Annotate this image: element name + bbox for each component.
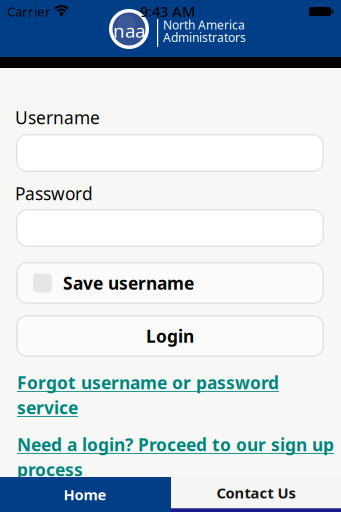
staticText: service [17, 396, 78, 419]
staticText: Save username [63, 271, 194, 294]
button[interactable]: Home [0, 477, 170, 512]
staticText: process [17, 458, 83, 481]
staticText: 9:43 AM [140, 1, 195, 21]
staticText: Need a login? Proceed to our sign up [17, 433, 334, 456]
staticText: Username [15, 106, 100, 129]
staticText: Home [63, 485, 106, 504]
staticText: naa [113, 18, 145, 43]
button[interactable]: Contact Us [171, 477, 341, 508]
button[interactable]: Forgot username or password [17, 371, 279, 419]
button[interactable]: Save username [16, 262, 324, 304]
staticText: Administrators [163, 29, 246, 45]
button[interactable]: Need a login? Proceed to our sign up [17, 433, 334, 481]
staticText: North America [163, 17, 245, 33]
staticText: Forgot username or password [17, 371, 279, 394]
button[interactable]: Login [16, 315, 324, 357]
staticText: Password [15, 182, 93, 205]
staticText: Carrier [7, 2, 51, 20]
staticText: Contact Us [216, 483, 295, 502]
staticText: Login [146, 324, 194, 347]
